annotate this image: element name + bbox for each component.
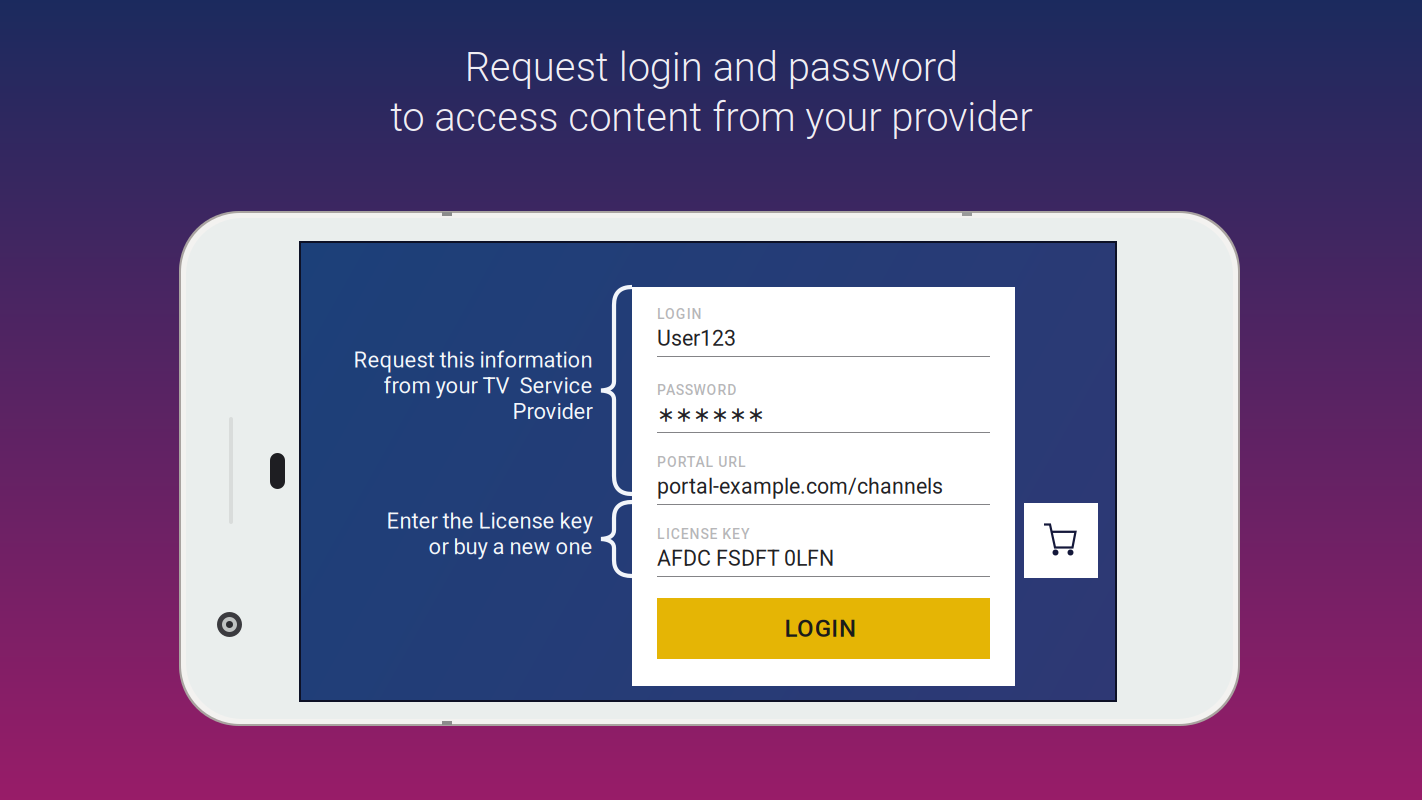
staticText: LOGIN [784, 614, 862, 642]
staticText: Request login and password to access con… [390, 44, 1032, 141]
staticText: ∗∗∗∗∗∗ [657, 402, 765, 427]
staticText: PORTAL URL [657, 454, 754, 470]
button[interactable]: LOGIN [657, 598, 990, 659]
staticText: Enter the License key or buy a new one [386, 508, 592, 560]
staticText: AFDC FSDFT 0LFN [657, 546, 834, 571]
staticText: LICENSE KEY [657, 526, 758, 542]
staticText: LOGIN [657, 306, 709, 322]
button[interactable]: Buy a new license key [1024, 503, 1098, 578]
staticText: User123 [657, 326, 736, 351]
staticText: Request this information from your TV Se… [353, 347, 592, 424]
staticText: portal-example.com/channels [657, 474, 943, 499]
staticText: PASSWORD [657, 382, 744, 398]
